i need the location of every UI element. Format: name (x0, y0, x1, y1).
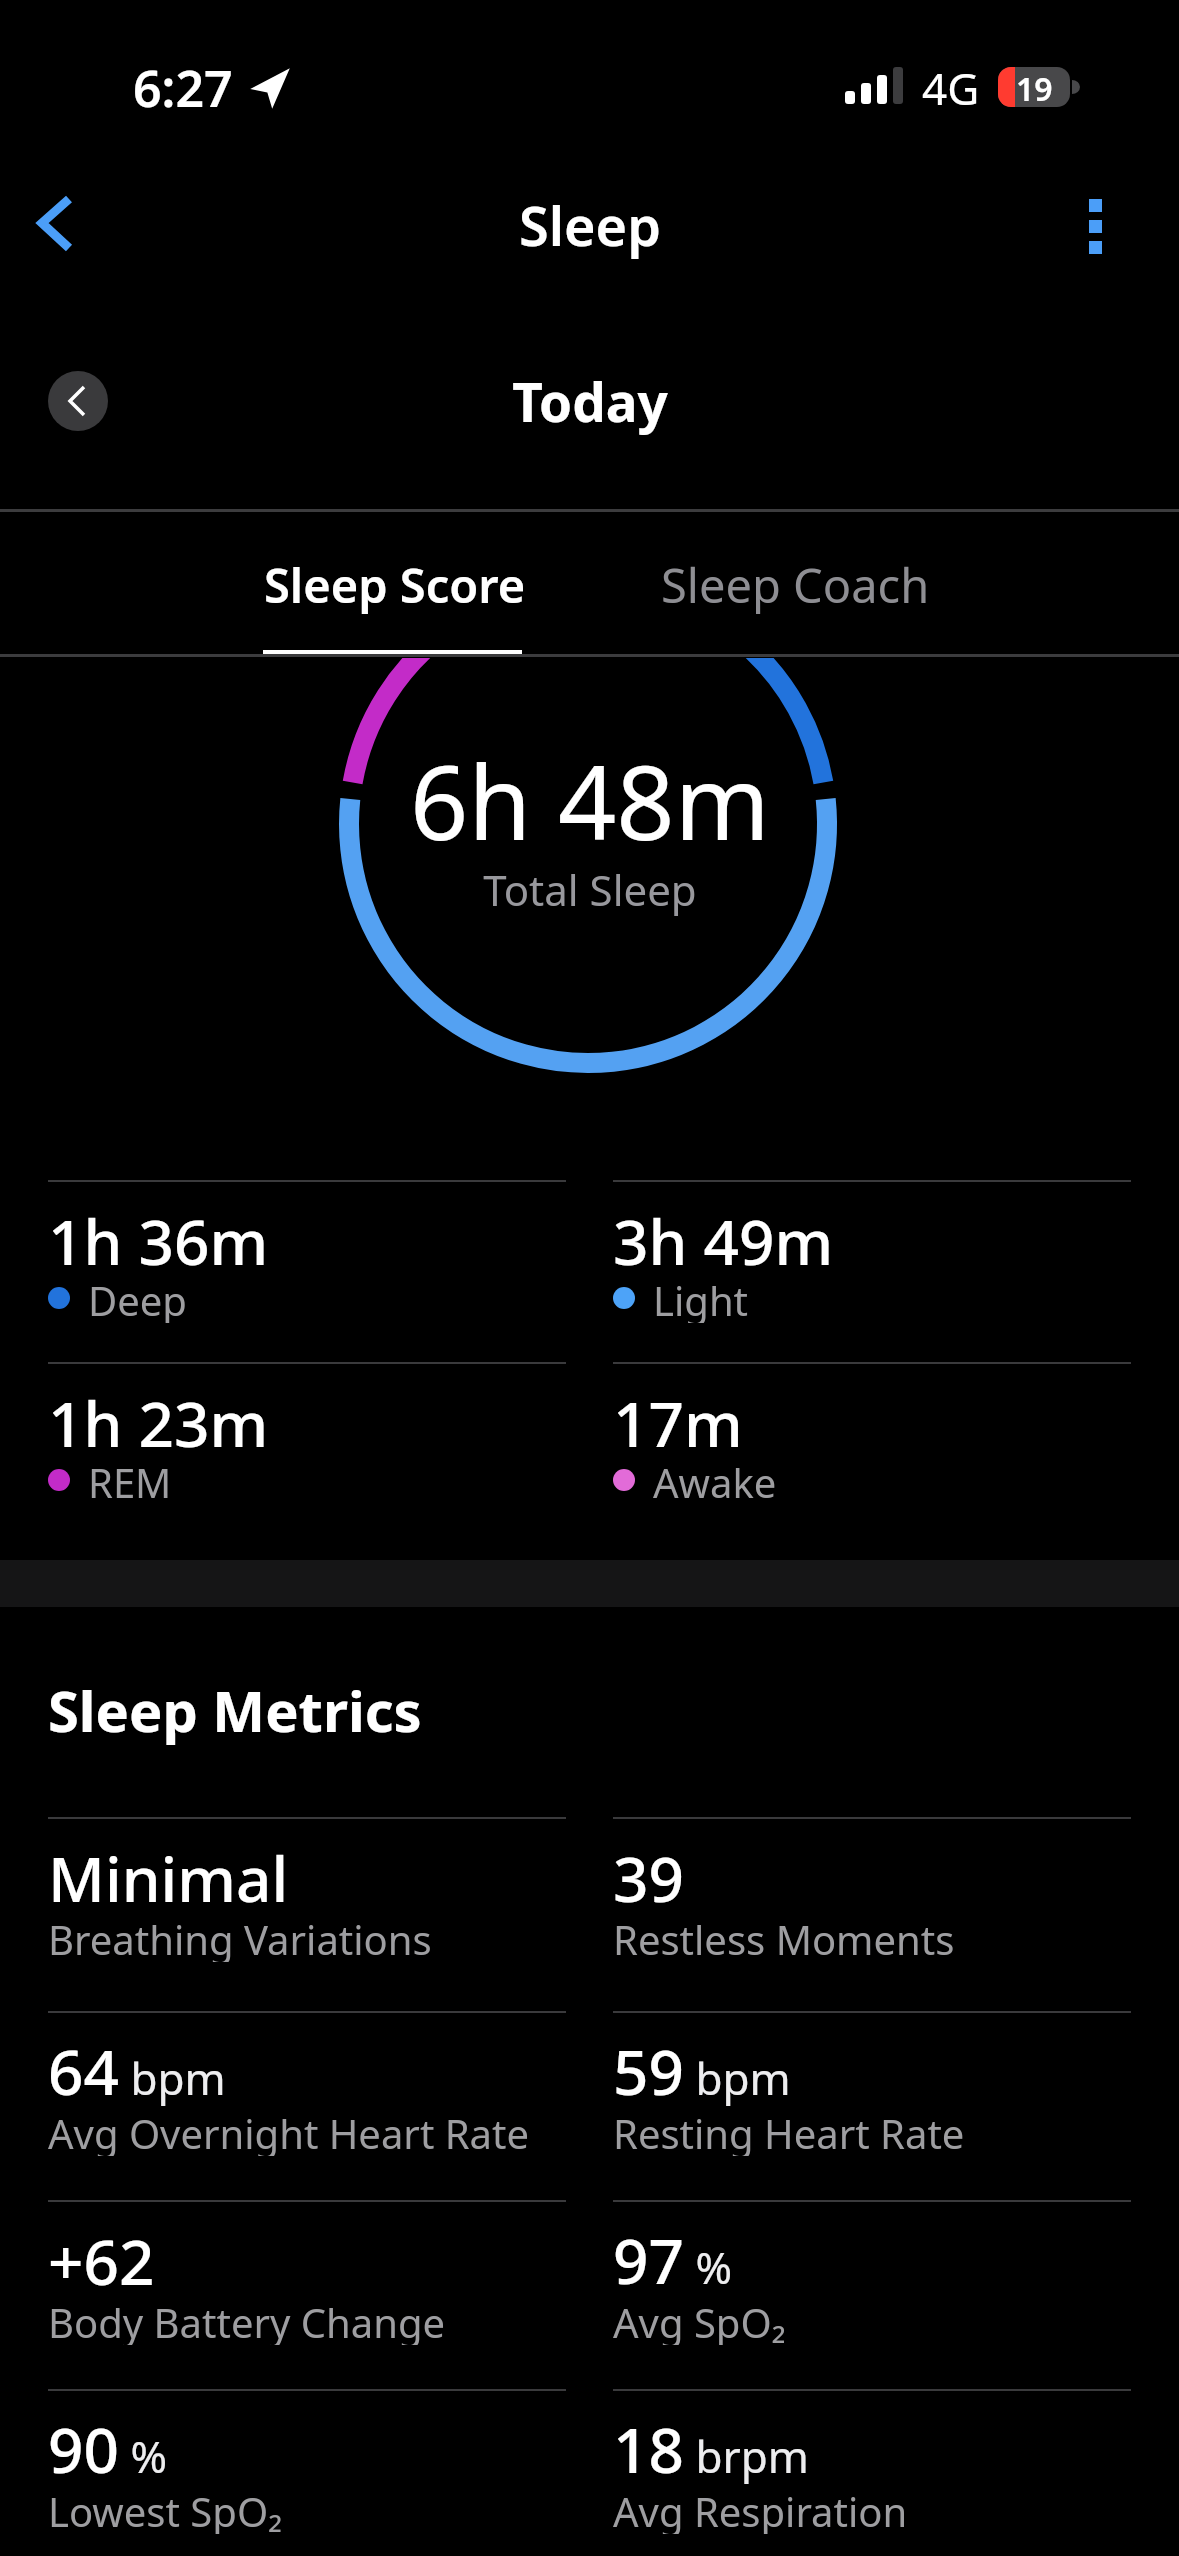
staticText: 97 (613, 2218, 684, 2294)
staticText: Awake (653, 1455, 777, 1505)
button[interactable]: 1h 23m (48, 1381, 566, 1457)
staticText: 19 (1016, 67, 1053, 107)
staticText: 90 (48, 2407, 119, 2483)
staticText: brpm (684, 2426, 809, 2486)
button[interactable]: 17m (613, 1381, 1131, 1457)
button[interactable] (1065, 190, 1125, 262)
button[interactable]: Sleep Score (230, 540, 560, 630)
staticText: 6h 48m (410, 731, 770, 870)
staticText: 4G (922, 58, 980, 118)
button[interactable]: 97 (613, 2219, 1131, 2295)
button[interactable]: 64 (48, 2030, 566, 2106)
button[interactable]: 1h 36m (48, 1199, 566, 1275)
button[interactable]: 59 (613, 2030, 1131, 2106)
button[interactable]: +62 (48, 2219, 566, 2295)
staticText: 18 (613, 2407, 684, 2483)
staticText: Avg Respiration (613, 2484, 908, 2534)
staticText: Minimal (48, 1836, 289, 1912)
staticText: 17m (613, 1381, 743, 1457)
button[interactable]: 39 (613, 1836, 1131, 1912)
staticText: Sleep (519, 188, 661, 262)
button[interactable]: Sleep Coach (630, 540, 960, 630)
staticText: Body Battery Change (48, 2295, 446, 2345)
staticText: bpm (119, 2048, 226, 2108)
staticText: Light (653, 1273, 749, 1323)
staticText: Sleep Score (264, 553, 526, 617)
staticText: 59 (613, 2029, 684, 2105)
button[interactable]: Minimal (48, 1836, 566, 1912)
button[interactable] (48, 371, 108, 431)
staticText: 1h 36m (48, 1199, 269, 1275)
staticText: REM (88, 1455, 172, 1505)
staticText: Avg SpO₂ (613, 2295, 786, 2345)
staticText: 1h 23m (48, 1381, 269, 1457)
staticText: Total Sleep (483, 861, 697, 918)
staticText: bpm (684, 2048, 791, 2108)
staticText: 64 (48, 2029, 119, 2105)
staticText: Avg Overnight Heart Rate (48, 2106, 530, 2156)
button[interactable]: 3h 49m (613, 1199, 1131, 1275)
staticText: +62 (48, 2219, 155, 2295)
staticText: Restless Moments (613, 1912, 955, 1962)
staticText: % (684, 2237, 733, 2297)
button[interactable] (20, 198, 90, 252)
staticText: 39 (613, 1836, 684, 1912)
staticText: Sleep Metrics (48, 1672, 422, 1748)
staticText: Today (512, 365, 668, 437)
button[interactable]: 18 (613, 2408, 1131, 2484)
staticText: Sleep Coach (661, 553, 930, 617)
staticText: Breathing Variations (48, 1912, 432, 1962)
staticText: Deep (88, 1273, 187, 1323)
staticText: Resting Heart Rate (613, 2106, 965, 2156)
staticText: % (119, 2426, 168, 2486)
staticText: 3h 49m (613, 1199, 834, 1275)
staticText: Lowest SpO₂ (48, 2484, 283, 2534)
staticText: 6:27 (133, 54, 233, 122)
button[interactable]: 90 (48, 2408, 566, 2484)
